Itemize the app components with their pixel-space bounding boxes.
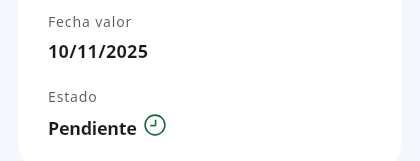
staticText: Pendiente — [48, 116, 137, 141]
button[interactable]: Estado — [18, 75, 401, 141]
staticText: Estado — [48, 87, 98, 106]
button[interactable]: Fecha valor — [18, 0, 401, 74]
button[interactable]: Estado pendiente — [144, 114, 166, 136]
staticText: Fecha valor — [48, 12, 133, 31]
staticText: 10/11/2025 — [48, 39, 149, 64]
